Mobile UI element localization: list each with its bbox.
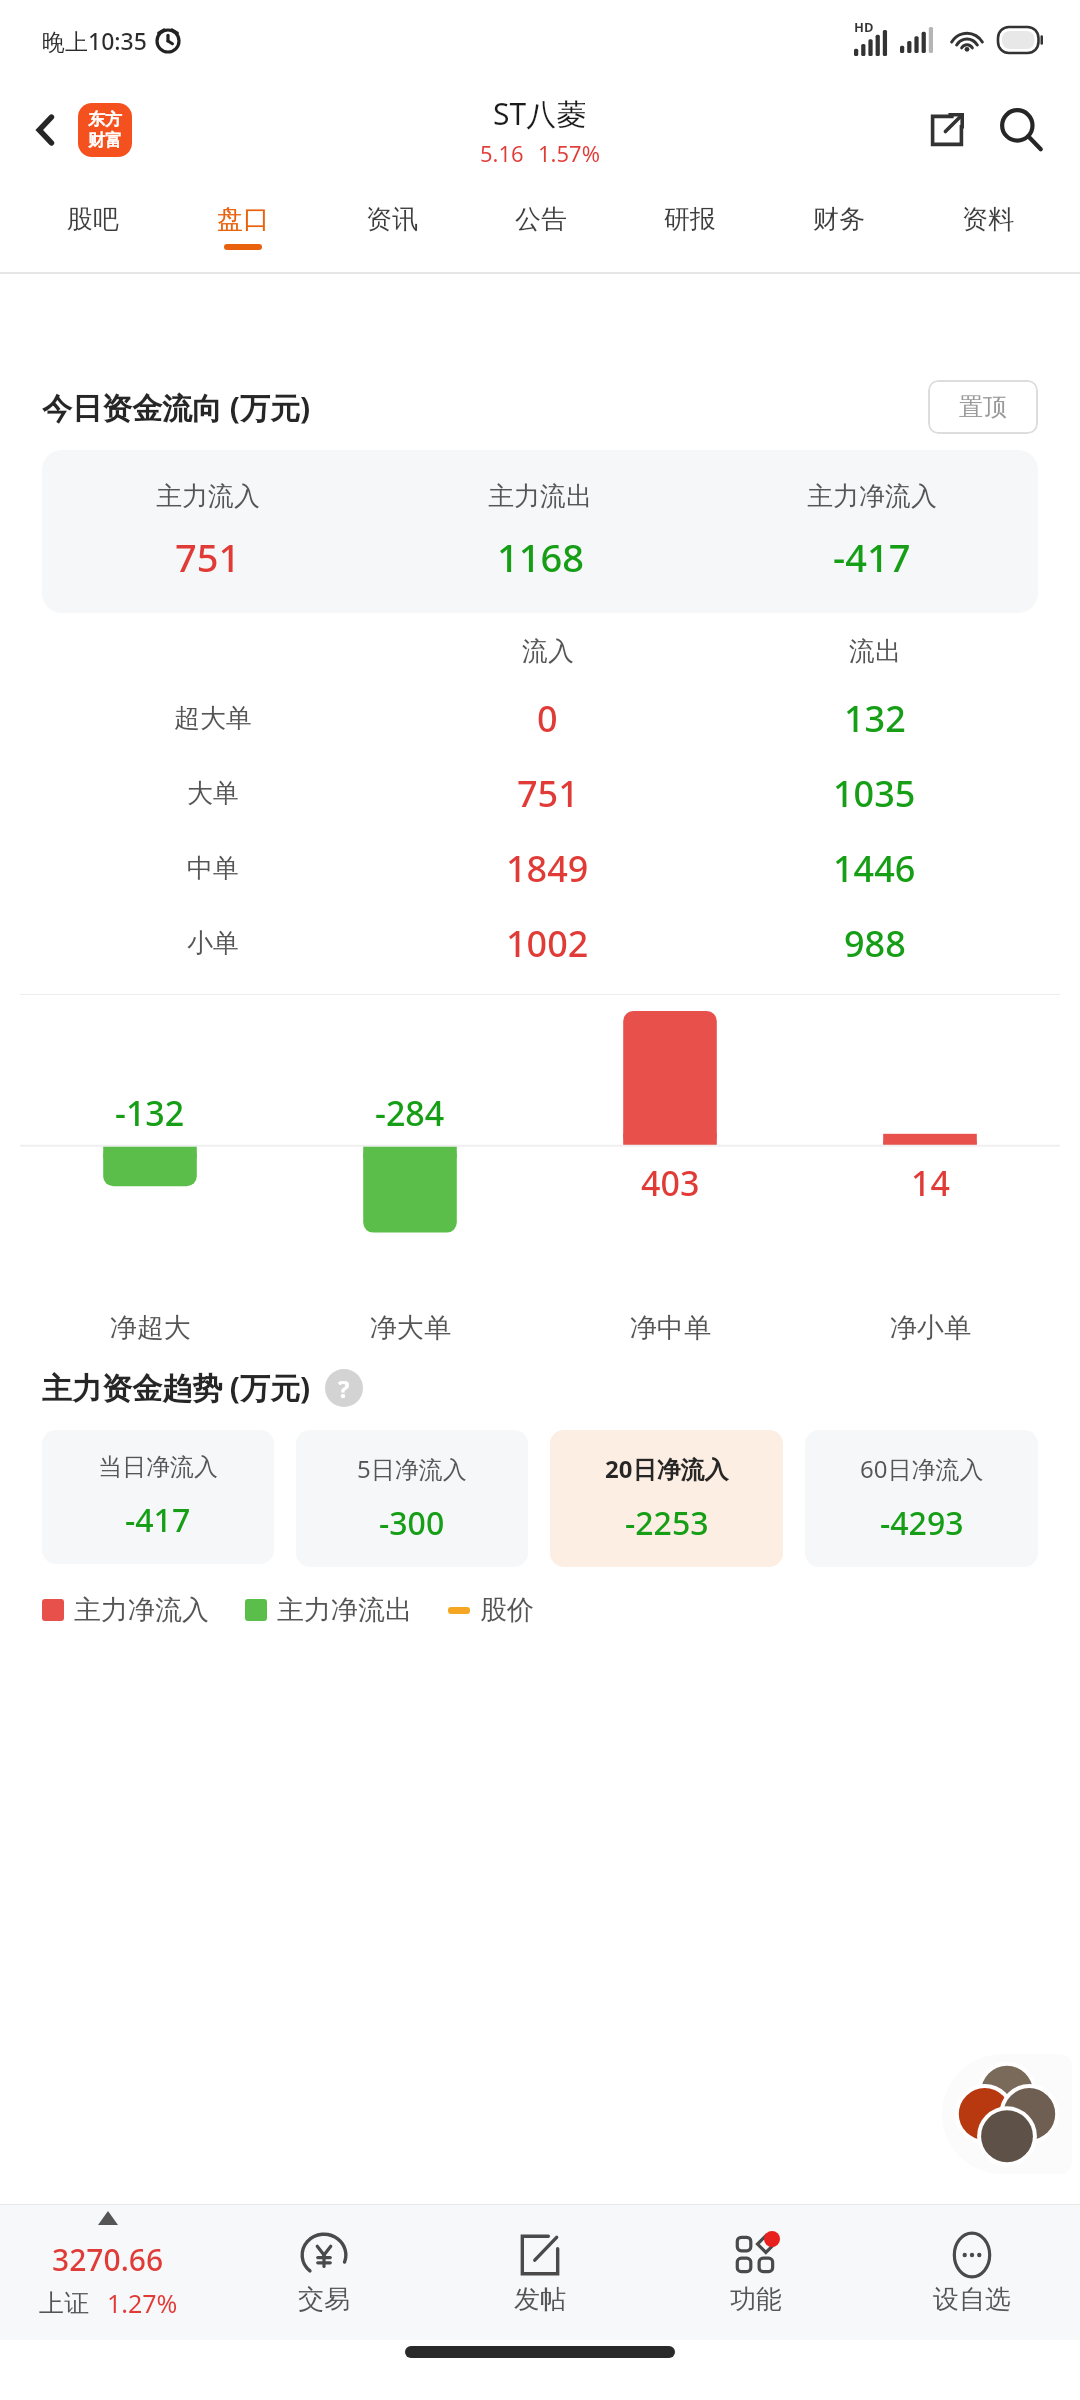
staticText: 主力净流入: [807, 480, 937, 513]
staticText: 盘口: [217, 203, 269, 236]
staticText: 置顶: [959, 392, 1007, 422]
button[interactable]: 功能: [648, 2205, 864, 2340]
staticText: 净小单: [890, 1311, 971, 1345]
staticText: 20日净流入: [605, 1452, 729, 1485]
staticText: 财务: [813, 203, 865, 236]
button[interactable]: 置顶: [928, 380, 1038, 434]
staticText: 1446: [833, 844, 916, 893]
staticText: 1.57%: [538, 138, 600, 168]
staticText: 751: [517, 769, 579, 818]
staticText: 净大单: [370, 1311, 451, 1345]
staticText: 设自选: [933, 2283, 1011, 2316]
staticText: 60日净流入: [860, 1452, 984, 1485]
button[interactable]: 发帖: [432, 2205, 648, 2340]
staticText: 流入: [522, 635, 574, 668]
button[interactable]: Share: [914, 97, 980, 163]
staticText: 1168: [497, 531, 584, 583]
staticText: HD: [854, 18, 874, 36]
button[interactable]: 5日净流入: [296, 1430, 528, 1567]
button[interactable]: Back: [18, 102, 74, 158]
button[interactable]: 财务: [764, 180, 913, 272]
staticText: 股吧: [67, 203, 119, 236]
staticText: -284: [375, 1090, 445, 1136]
staticText: 晚上10:35: [42, 25, 147, 56]
staticText: 发帖: [514, 2283, 566, 2316]
button[interactable]: 公告: [466, 180, 615, 272]
staticText: 5.16: [480, 138, 524, 168]
button[interactable]: 中单: [42, 844, 1038, 893]
staticText: 研报: [664, 203, 716, 236]
staticText: 当日净流入: [98, 1452, 218, 1482]
button[interactable]: 3270.66: [0, 2205, 216, 2340]
button[interactable]: 研报: [615, 180, 764, 272]
staticText: 主力净流入: [74, 1593, 209, 1627]
staticText: 14: [911, 1160, 950, 1206]
button[interactable]: 20日净流入: [550, 1430, 783, 1567]
staticText: 403: [641, 1160, 700, 1206]
staticText: 3270.66: [52, 2239, 164, 2280]
staticText: 1002: [506, 919, 589, 968]
staticText: 132: [844, 694, 906, 743]
staticText: 主力流入: [156, 480, 260, 513]
staticText: 1849: [506, 844, 589, 893]
staticText: 主力流出: [488, 480, 592, 513]
staticText: 0: [537, 694, 558, 743]
staticText: 净中单: [630, 1311, 711, 1345]
button[interactable]: 60日净流入: [805, 1430, 1038, 1567]
staticText: ST八菱: [493, 93, 587, 134]
staticText: 交易: [298, 2283, 350, 2316]
staticText: -4293: [880, 1501, 964, 1545]
staticText: 751: [175, 531, 241, 583]
staticText: 净超大: [110, 1311, 191, 1345]
staticText: 股价: [480, 1593, 534, 1627]
button[interactable]: Floating shortcut: [942, 2054, 1072, 2174]
button[interactable]: 小单: [42, 919, 1038, 968]
staticText: 1.27%: [107, 2286, 178, 2320]
staticText: -2253: [625, 1501, 709, 1545]
staticText: 上证: [39, 2288, 89, 2319]
staticText: 5日净流入: [357, 1452, 467, 1485]
staticText: -417: [125, 1498, 191, 1542]
staticText: 主力净流出: [277, 1593, 412, 1627]
button[interactable]: 交易: [216, 2205, 432, 2340]
button[interactable]: 盘口: [168, 180, 317, 272]
staticText: 公告: [515, 203, 567, 236]
staticText: 功能: [730, 2283, 782, 2316]
button[interactable]: 主力流入: [42, 450, 1038, 613]
staticText: 东方: [88, 109, 122, 130]
staticText: 1035: [833, 769, 916, 818]
button[interactable]: 超大单: [42, 694, 1038, 743]
button[interactable]: 设自选: [864, 2205, 1080, 2340]
button[interactable]: 资讯: [317, 180, 466, 272]
staticText: -417: [833, 531, 911, 583]
staticText: 今日资金流向 (万元): [42, 387, 311, 428]
staticText: 超大单: [174, 702, 252, 735]
staticText: -132: [115, 1090, 185, 1136]
button[interactable]: Search: [986, 95, 1056, 165]
staticText: 988: [844, 919, 906, 968]
staticText: 小单: [187, 927, 239, 960]
staticText: 资料: [962, 203, 1014, 236]
button[interactable]: 大单: [42, 769, 1038, 818]
button[interactable]: Help: [325, 1369, 363, 1407]
staticText: 财富: [88, 130, 122, 151]
button[interactable]: 股吧: [18, 180, 168, 272]
staticText: 资讯: [366, 203, 418, 236]
staticText: 中单: [187, 852, 239, 885]
button[interactable]: 资料: [913, 180, 1062, 272]
staticText: 流出: [849, 635, 901, 668]
staticText: ?: [338, 1372, 350, 1405]
button[interactable]: East Money: [78, 103, 132, 157]
button[interactable]: 当日净流入: [42, 1430, 274, 1564]
staticText: 大单: [187, 777, 239, 810]
staticText: -300: [379, 1501, 445, 1545]
staticText: 主力资金趋势 (万元): [42, 1367, 311, 1408]
